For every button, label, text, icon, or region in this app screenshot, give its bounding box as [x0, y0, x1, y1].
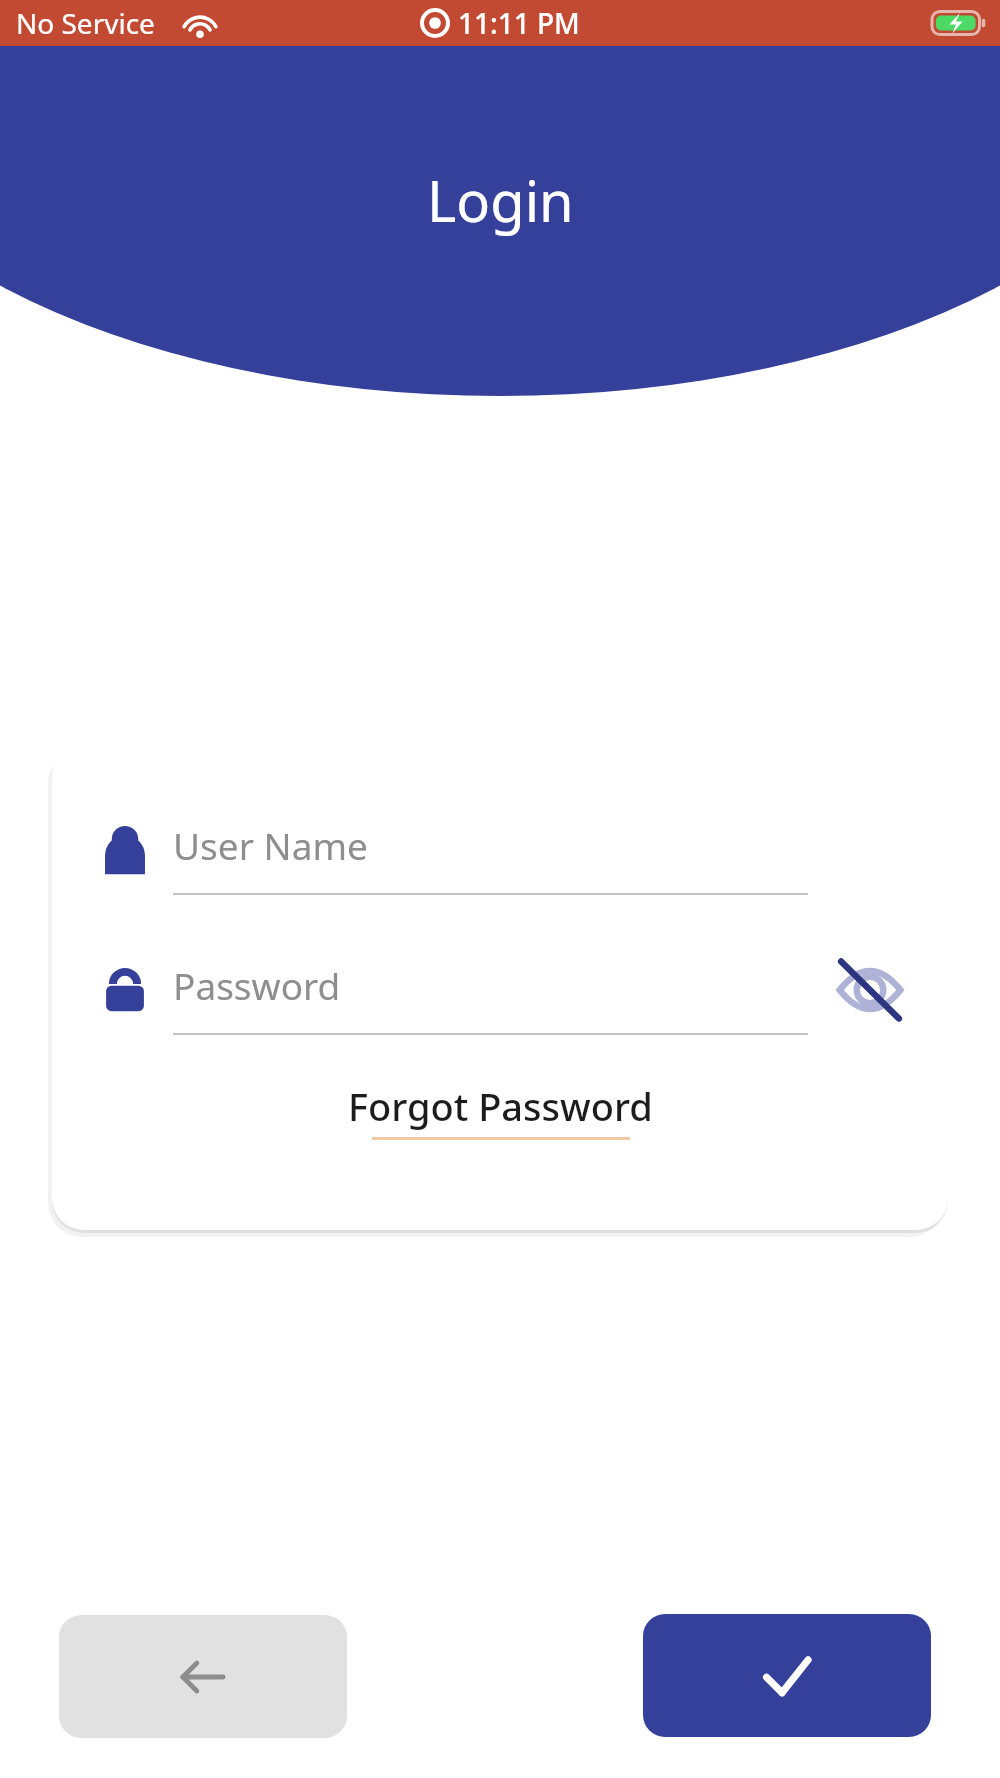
button[interactable]: User Name	[52, 790, 948, 910]
staticText: Password	[173, 960, 341, 1010]
button[interactable]: Confirm	[643, 1614, 931, 1737]
staticText: Forgot Password	[348, 1080, 653, 1132]
staticText: No Service	[16, 4, 155, 42]
staticText: Login	[427, 162, 574, 238]
button[interactable]: Forgot Password	[348, 1080, 653, 1140]
button[interactable]: Password	[52, 930, 948, 1050]
staticText: 11:11 PM	[458, 4, 580, 42]
button[interactable]: Back	[59, 1615, 347, 1738]
staticText: User Name	[173, 820, 368, 870]
button[interactable]: Show password	[832, 952, 908, 1028]
